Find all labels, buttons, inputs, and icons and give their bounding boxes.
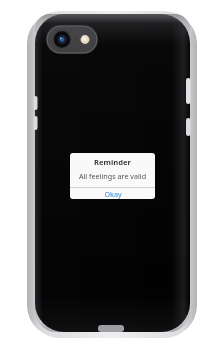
button[interactable]: Okay xyxy=(70,188,155,199)
other: Phone case product photo xyxy=(0,0,224,350)
staticText: Reminder xyxy=(70,157,155,167)
staticText: Okay xyxy=(104,189,122,199)
staticText: All feelings are valid xyxy=(70,171,155,181)
